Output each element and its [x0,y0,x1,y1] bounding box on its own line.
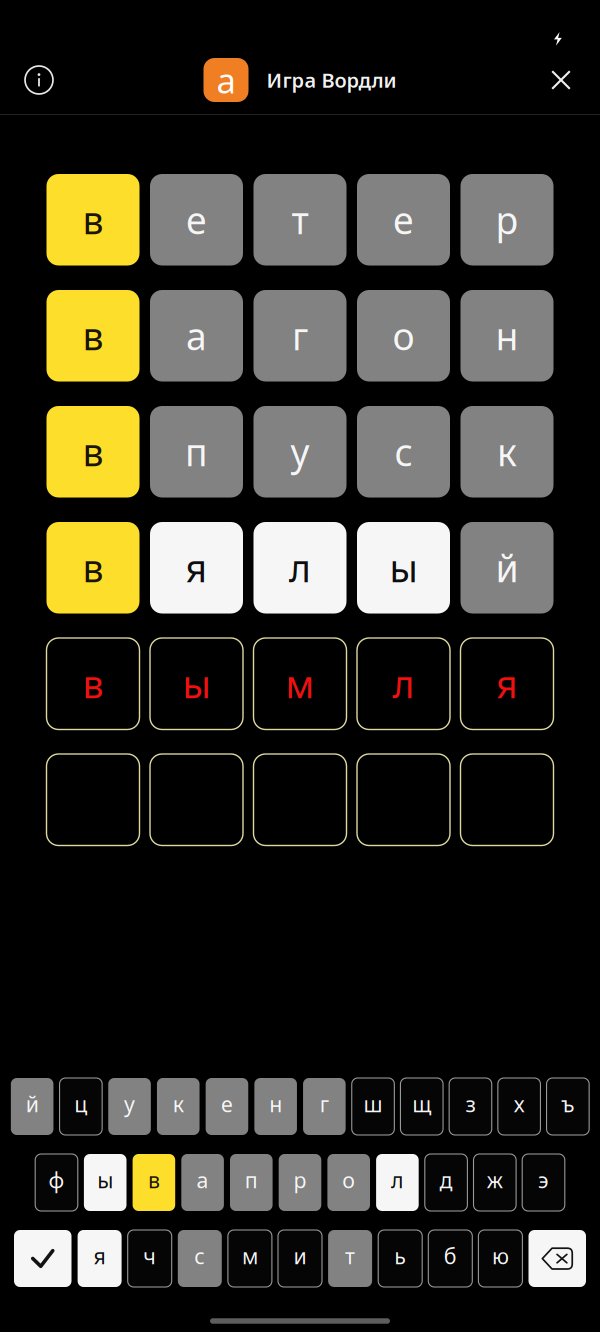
staticText: в [82,543,103,593]
staticText: л [392,659,414,709]
button[interactable]: а [181,1154,224,1211]
staticText: ь [394,1242,406,1270]
staticText: д [440,1166,453,1194]
staticText: м [285,659,314,709]
staticText: щ [412,1090,431,1118]
button[interactable]: ч [128,1230,172,1287]
button[interactable]: ь [378,1230,422,1287]
button[interactable]: у [108,1078,151,1135]
button[interactable]: и [278,1230,322,1287]
staticText: ы [389,543,417,593]
staticText: х [514,1090,525,1118]
staticText: в [148,1166,160,1194]
staticText: к [173,1090,184,1118]
button[interactable]: Enter [14,1230,71,1287]
staticText: ъ [561,1090,574,1118]
staticText: я [185,543,207,593]
button[interactable]: р [279,1154,321,1211]
button[interactable]: ы [84,1154,126,1211]
staticText: к [497,427,517,477]
button[interactable]: э [522,1154,565,1211]
staticText: в [82,427,103,477]
button[interactable]: л [376,1154,419,1211]
staticText: т [291,195,308,245]
button[interactable]: й [11,1078,53,1135]
button[interactable]: к [157,1078,199,1135]
staticText: п [185,427,208,477]
staticText: а [197,1166,209,1194]
staticText: м [242,1242,258,1270]
staticText: я [496,659,518,709]
button[interactable]: щ [400,1078,443,1135]
staticText: р [495,195,518,245]
staticText: с [394,427,412,477]
button[interactable]: с [178,1230,222,1287]
button[interactable]: г [303,1078,346,1135]
staticText: ш [363,1090,382,1118]
button[interactable]: ю [478,1230,522,1287]
staticText: a [216,57,235,103]
button[interactable]: м [228,1230,272,1287]
staticText: ч [143,1242,156,1270]
staticText: л [391,1166,404,1194]
button[interactable]: х [498,1078,540,1135]
button[interactable]: ш [352,1078,394,1135]
staticText: и [293,1242,306,1270]
staticText: ф [48,1166,64,1194]
staticText: с [194,1242,205,1270]
staticText: ж [487,1166,503,1194]
button[interactable]: в [133,1154,175,1211]
staticText: ы [97,1166,113,1194]
button[interactable]: п [230,1154,273,1211]
staticText: е [221,1090,233,1118]
staticText: з [465,1090,475,1118]
staticText: б [444,1242,457,1270]
staticText: у [124,1090,135,1118]
staticText: п [245,1166,258,1194]
staticText: о [392,311,414,361]
staticText: й [26,1090,39,1118]
button[interactable]: з [449,1078,492,1135]
button[interactable]: Info [15,56,63,104]
staticText: в [82,195,103,245]
button[interactable]: н [254,1078,297,1135]
button[interactable]: ф [35,1154,78,1211]
staticText: л [289,543,311,593]
staticText: в [82,311,103,361]
staticText: т [345,1242,355,1270]
button[interactable]: д [425,1154,467,1211]
staticText: ц [74,1090,87,1118]
staticText: о [342,1166,355,1194]
button[interactable]: б [428,1230,472,1287]
button[interactable]: т [328,1230,372,1287]
staticText: ы [182,659,210,709]
button[interactable]: ъ [546,1078,589,1135]
staticText: е [393,195,414,245]
button[interactable]: о [327,1154,370,1211]
button[interactable]: ж [473,1154,516,1211]
staticText: Игра Вордли [266,67,396,93]
button[interactable]: ц [59,1078,102,1135]
staticText: в [82,659,103,709]
staticText: н [495,311,518,361]
staticText: ю [492,1242,509,1270]
staticText: й [495,543,518,593]
button[interactable]: е [206,1078,248,1135]
staticText: у [290,427,309,477]
staticText: г [292,311,308,361]
button[interactable]: я [78,1230,122,1287]
button[interactable]: Delete [528,1230,586,1287]
button[interactable]: Close [537,56,585,104]
staticText: г [320,1090,329,1118]
staticText: е [186,195,207,245]
staticText: н [269,1090,282,1118]
staticText: э [538,1166,549,1194]
staticText: я [94,1242,106,1270]
staticText: р [293,1166,306,1194]
staticText: а [186,311,207,361]
